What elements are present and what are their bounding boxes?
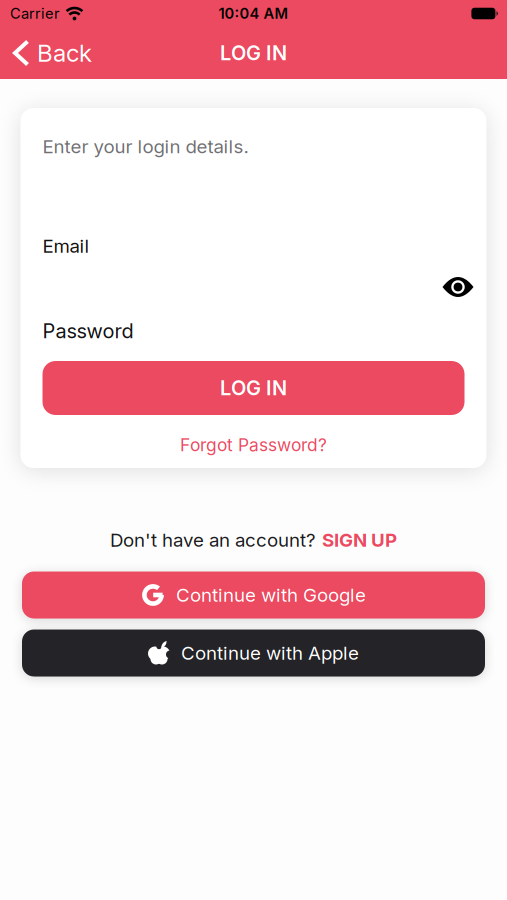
button[interactable]: Continue with Google <box>22 571 485 618</box>
staticText: Continue with Google <box>176 584 366 606</box>
button[interactable]: Show password <box>442 275 473 298</box>
button[interactable]: Continue with Apple <box>22 629 485 676</box>
staticText: 10:04 AM <box>218 5 288 22</box>
staticText: Forgot Password? <box>180 435 327 455</box>
staticText: Back <box>37 39 92 67</box>
staticText: LOG IN <box>220 41 287 65</box>
staticText: Don't have an account? <box>110 529 316 551</box>
staticText: Carrier <box>10 5 60 22</box>
button[interactable]: SIGN UP <box>322 529 397 551</box>
staticText: Password <box>42 319 133 343</box>
staticText: LOG IN <box>220 376 287 400</box>
button[interactable]: Back <box>0 39 92 67</box>
button[interactable]: Forgot Password? <box>180 435 327 455</box>
staticText: Enter your login details. <box>42 135 248 157</box>
staticText: Continue with Apple <box>181 642 359 664</box>
staticText: SIGN UP <box>322 529 397 551</box>
staticText: Email <box>42 235 89 257</box>
button[interactable]: LOG IN <box>42 361 464 415</box>
